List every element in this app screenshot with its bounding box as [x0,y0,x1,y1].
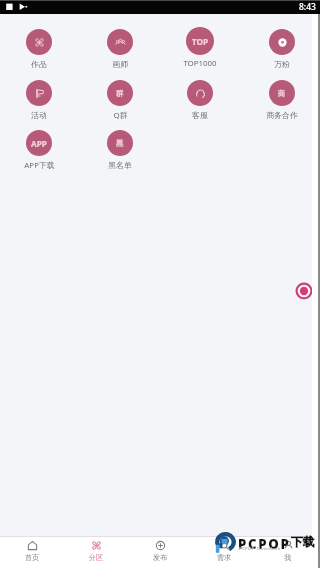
staticText: 群 [116,89,124,98]
button[interactable]: 发布 [129,541,191,566]
button[interactable]: 群 [81,80,159,121]
staticText: PCPOP [238,535,291,553]
staticText: 黑 [116,139,124,148]
staticText: Q群 [113,110,128,121]
button[interactable]: 首页 [1,541,63,566]
button[interactable]: APP [0,130,78,171]
button[interactable]: 需求 [193,541,255,566]
staticText: 8:43 [299,1,316,13]
staticText: 下载 [291,535,315,550]
button[interactable]: Record [295,282,313,300]
staticText: APP下载 [24,160,55,171]
button[interactable]: TOP [161,27,239,69]
staticText: 需求 [217,553,232,562]
staticText: APP [31,138,47,149]
button[interactable]: 作品 [0,29,78,69]
button[interactable]: 我 [257,541,319,566]
button[interactable]: 万粉 [243,29,320,69]
staticText: 黑名单 [108,160,132,170]
staticText: 发布 [153,553,168,562]
staticText: 画师 [112,59,128,69]
staticText: 客服 [192,110,208,120]
staticText: 作品 [31,59,47,69]
button[interactable]: 客服 [161,80,239,120]
staticText: 商务合作 [266,110,298,120]
staticText: 活动 [31,110,47,120]
staticText: 万粉 [274,59,290,69]
button[interactable]: 分区 [65,541,127,566]
button[interactable]: 黑 [81,130,159,170]
staticText: TOP [192,36,209,47]
button[interactable]: 商 [243,80,320,120]
staticText: 商 [278,89,286,98]
staticText: TOP1000 [183,58,217,69]
staticText: 首页 [25,553,40,562]
staticText: 分区 [89,553,104,562]
button[interactable]: 活动 [0,80,78,120]
staticText: 我 [284,553,292,562]
button[interactable]: 画师 [81,29,159,69]
staticText: PCPOP Overclock [239,546,281,552]
